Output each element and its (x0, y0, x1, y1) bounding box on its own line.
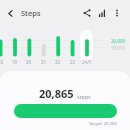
staticText: 22 (55, 59, 61, 65)
staticText: 10,000 (111, 45, 126, 51)
staticText: Target: 20,000 (89, 121, 117, 127)
staticText: 24/1 (82, 59, 92, 65)
staticText: 18 (0, 59, 4, 65)
staticText: 20,865 (39, 86, 74, 101)
button[interactable]: Share (79, 5, 94, 20)
staticText: 20,000 (111, 38, 126, 44)
button[interactable]: Statistics (94, 5, 109, 20)
staticText: 21 (41, 59, 47, 65)
staticText: 20 (26, 59, 32, 65)
staticText: 19 (12, 59, 18, 65)
staticText: Steps (21, 8, 41, 18)
button[interactable] (14, 104, 117, 118)
button[interactable]: Back (0, 3, 21, 23)
staticText: steps (77, 93, 91, 100)
staticText: 23 (70, 59, 76, 65)
button[interactable]: More options (109, 5, 124, 20)
